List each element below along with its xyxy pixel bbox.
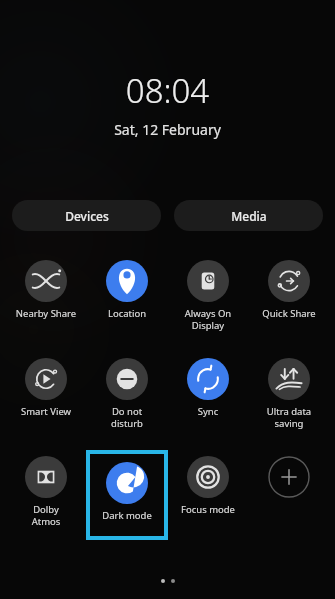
staticText: Media (231, 208, 267, 224)
button[interactable]: Ultra data saving (250, 354, 328, 429)
staticText: Sat, 12 February (0, 120, 335, 139)
staticText: Sync (169, 405, 247, 418)
staticText: Ultra data saving (250, 405, 328, 429)
button[interactable]: Quick Share (250, 256, 328, 320)
staticText: Dolby Atmos (7, 503, 85, 527)
button[interactable]: Devices (12, 200, 161, 231)
button[interactable]: Do not disturb (88, 354, 166, 429)
staticText: Quick Share (250, 307, 328, 320)
staticText: Dark mode (88, 509, 166, 522)
staticText: Smart View (7, 405, 85, 418)
button[interactable]: Focus mode (169, 452, 247, 516)
button[interactable]: Nearby Share (7, 256, 85, 320)
button[interactable]: Location (88, 256, 166, 320)
staticText: Location (88, 307, 166, 320)
button[interactable]: Media (174, 200, 323, 231)
staticText: 08:04 (0, 68, 335, 113)
staticText: Devices (65, 208, 109, 224)
staticText: Nearby Share (7, 307, 85, 320)
button[interactable]: Add tile (250, 452, 328, 498)
staticText: Always On Display (169, 307, 247, 331)
button[interactable]: Always On Display (169, 256, 247, 331)
staticText: Do not disturb (88, 405, 166, 429)
staticText: Focus mode (169, 503, 247, 516)
button[interactable]: Dolby Atmos (7, 452, 85, 527)
button[interactable]: Dark mode (88, 452, 166, 522)
button[interactable]: Sync (169, 354, 247, 418)
button[interactable]: Smart View (7, 354, 85, 418)
